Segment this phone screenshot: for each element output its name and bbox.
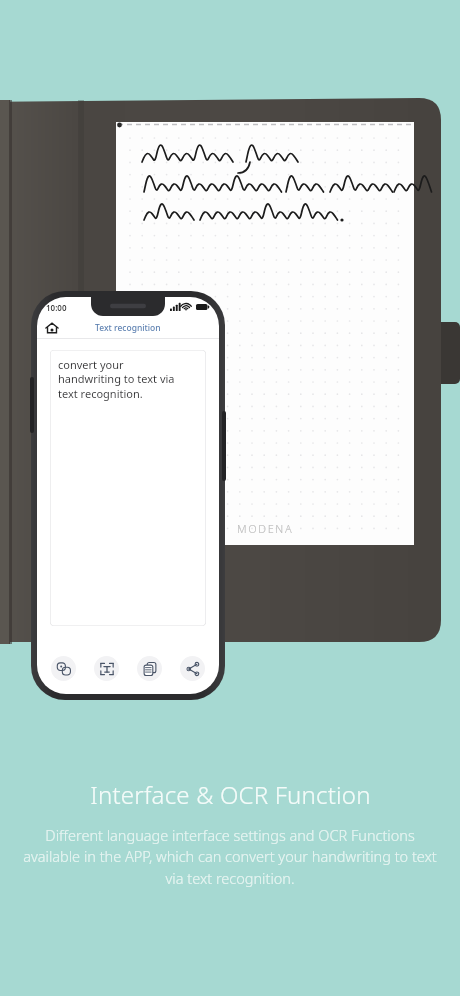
staticText: Interface & OCR Function bbox=[90, 778, 371, 811]
staticText: Different language interface settings an… bbox=[22, 825, 438, 889]
button[interactable]: convert your handwriting to text via tex… bbox=[50, 350, 206, 626]
staticText: 10:00 bbox=[46, 302, 67, 313]
button[interactable]: Recognise text bbox=[94, 656, 119, 681]
button[interactable]: Copy bbox=[137, 656, 162, 681]
button[interactable]: Home bbox=[44, 320, 60, 336]
staticText: Text recognition bbox=[95, 322, 161, 334]
staticText: convert your handwriting to text via tex… bbox=[58, 357, 175, 402]
button[interactable]: Share bbox=[180, 656, 205, 681]
staticText: MODENA bbox=[237, 521, 294, 536]
button[interactable]: Translate bbox=[51, 656, 76, 681]
